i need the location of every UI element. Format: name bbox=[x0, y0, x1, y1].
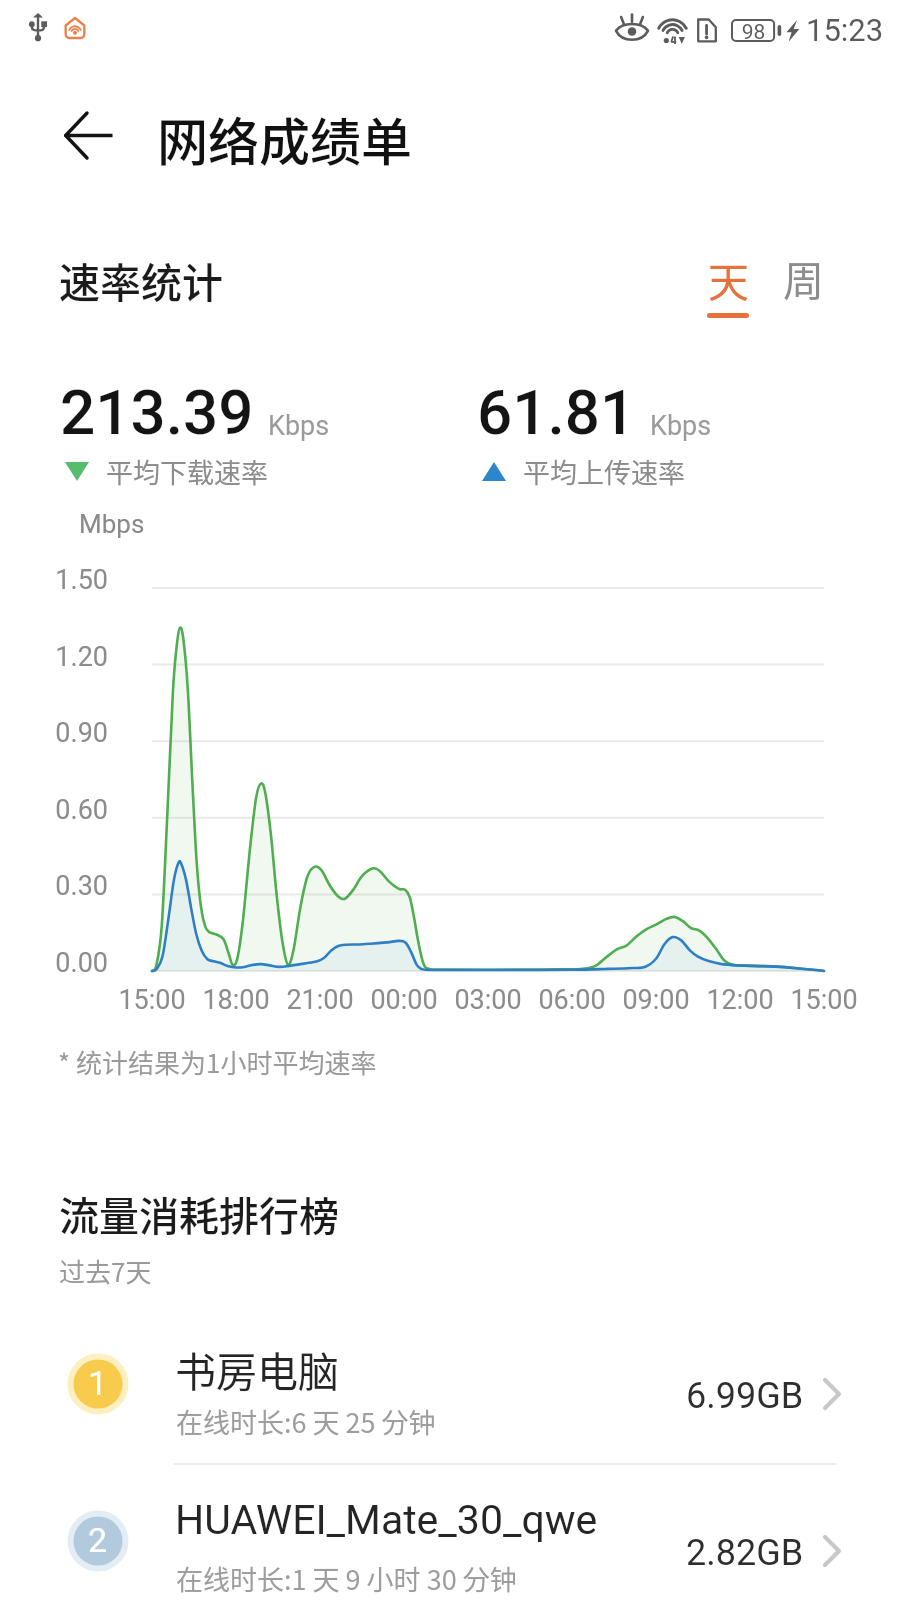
staticText: 00:00 bbox=[349, 984, 459, 1016]
staticText: 15:23 bbox=[806, 12, 884, 48]
staticText: 15:00 bbox=[769, 984, 879, 1016]
staticText: Kbps bbox=[268, 410, 330, 442]
staticText: 平均下载速率 bbox=[106, 452, 268, 491]
staticText: 网络成绩单 bbox=[157, 102, 413, 176]
staticText: 61.81 bbox=[477, 376, 636, 449]
staticText: 书房电脑 bbox=[175, 1339, 339, 1398]
staticText: 09:00 bbox=[601, 984, 711, 1016]
staticText: 周 bbox=[783, 248, 824, 307]
button[interactable]: 周 bbox=[766, 248, 836, 308]
staticText: Mbps bbox=[79, 509, 145, 539]
staticText: * 统计结果为1小时平均速率 bbox=[58, 1043, 377, 1081]
staticText: HUAWEI_Mate_30_qwe bbox=[175, 1496, 598, 1544]
staticText: 213.39 bbox=[60, 376, 254, 449]
staticText: 98 bbox=[731, 20, 776, 45]
staticText: 2 bbox=[88, 1520, 108, 1560]
button[interactable]: 1 bbox=[0, 1345, 900, 1495]
staticText: 流量消耗排行榜 bbox=[59, 1185, 339, 1243]
staticText: 21:00 bbox=[265, 984, 375, 1016]
button[interactable]: 2 bbox=[0, 1502, 900, 1600]
staticText: 2.82GB bbox=[686, 1532, 804, 1574]
staticText: 6.99GB bbox=[686, 1375, 804, 1417]
staticText: 在线时长:1 天 9 小时 30 分钟 bbox=[176, 1559, 517, 1598]
staticText: 0.00 bbox=[44, 947, 108, 979]
staticText: 1.50 bbox=[44, 564, 108, 596]
staticText: 天 bbox=[708, 249, 749, 308]
staticText: Kbps bbox=[650, 410, 712, 442]
staticText: 在线时长:6 天 25 分钟 bbox=[176, 1402, 436, 1441]
staticText: 1.20 bbox=[44, 641, 108, 673]
staticText: 12:00 bbox=[685, 984, 795, 1016]
staticText: 速率统计 bbox=[59, 250, 223, 309]
staticText: 15:00 bbox=[97, 984, 207, 1016]
staticText: 1 bbox=[88, 1363, 108, 1403]
staticText: 0.90 bbox=[44, 717, 108, 749]
button[interactable]: Back bbox=[42, 89, 137, 184]
staticText: 过去7天 bbox=[59, 1252, 152, 1290]
staticText: 03:00 bbox=[433, 984, 543, 1016]
staticText: 0.30 bbox=[44, 870, 108, 902]
staticText: 0.60 bbox=[44, 794, 108, 826]
staticText: 06:00 bbox=[517, 984, 627, 1016]
button[interactable]: 天 bbox=[690, 248, 766, 324]
staticText: 平均上传速率 bbox=[523, 452, 685, 491]
staticText: 18:00 bbox=[181, 984, 291, 1016]
